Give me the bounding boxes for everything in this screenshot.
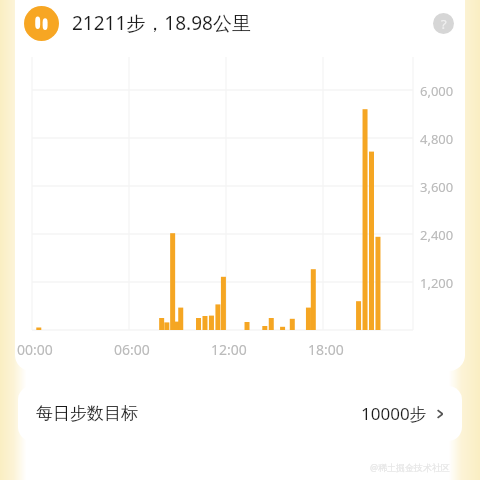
button[interactable]: 每日步数目标 [18, 386, 462, 441]
staticText: 18:00 [308, 340, 344, 359]
staticText: 00:00 [17, 340, 53, 359]
staticText: 21211步，18.98公里 [72, 10, 251, 36]
staticText: 2,400 [420, 226, 454, 244]
staticText: 12:00 [211, 340, 247, 359]
staticText: 10000步 [361, 402, 427, 425]
staticText: 1,200 [420, 274, 454, 292]
staticText: 每日步数目标 [36, 403, 138, 424]
staticText: 06:00 [114, 340, 150, 359]
staticText: 3,600 [420, 178, 454, 196]
staticText: ? [441, 15, 447, 33]
staticText: 6,000 [420, 82, 454, 100]
button[interactable]: Help [433, 13, 454, 34]
staticText: @稀土掘金技术社区 [370, 461, 451, 473]
staticText: 4,800 [420, 130, 454, 148]
